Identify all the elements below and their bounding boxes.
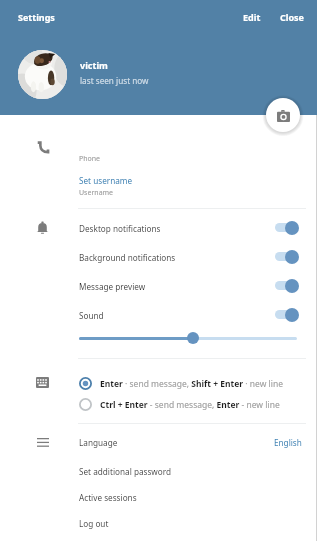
button[interactable]: Desktop notifications [70, 215, 307, 242]
staticText: Active sessions [79, 492, 137, 503]
staticText: Close [280, 11, 304, 23]
staticText: Background notifications [79, 252, 176, 263]
staticText: Settings [18, 11, 55, 23]
staticText: Language [79, 437, 118, 448]
button[interactable]: Set additional password [70, 458, 307, 480]
button[interactable]: Active sessions [70, 484, 307, 506]
button[interactable]: Set username [79, 175, 133, 186]
button[interactable]: Log out [70, 510, 307, 532]
staticText: Ctrl + Enter - send message, Enter - new… [100, 399, 280, 411]
button[interactable]: Message preview [70, 273, 307, 300]
button[interactable]: Background notifications [70, 244, 307, 271]
staticText: Sound [79, 310, 104, 321]
button[interactable]: Edit [243, 11, 261, 23]
button[interactable]: Ctrl + Enter - send message, Enter - new… [70, 396, 307, 416]
button[interactable]: Sound [70, 302, 307, 329]
staticText: Enter · send message, Shift + Enter · ne… [100, 378, 284, 390]
button[interactable]: Profile photo [18, 50, 67, 99]
staticText: last seen just now [80, 75, 149, 86]
staticText: Log out [79, 518, 109, 529]
button[interactable]: Close [280, 11, 304, 23]
staticText: Phone [79, 154, 101, 164]
button[interactable]: Volume [187, 332, 199, 344]
button[interactable]: Change profile photo [266, 98, 300, 132]
button[interactable]: Enter · send message, Shift + Enter · ne… [70, 375, 307, 395]
staticText: English [274, 437, 302, 448]
staticText: Message preview [79, 281, 146, 292]
staticText: Username [79, 188, 114, 198]
staticText: Desktop notifications [79, 223, 161, 234]
staticText: victim [80, 59, 108, 71]
staticText: Edit [243, 11, 261, 23]
staticText: Set username [79, 175, 133, 186]
button[interactable]: Language [70, 429, 307, 451]
staticText: Set additional password [79, 466, 172, 477]
